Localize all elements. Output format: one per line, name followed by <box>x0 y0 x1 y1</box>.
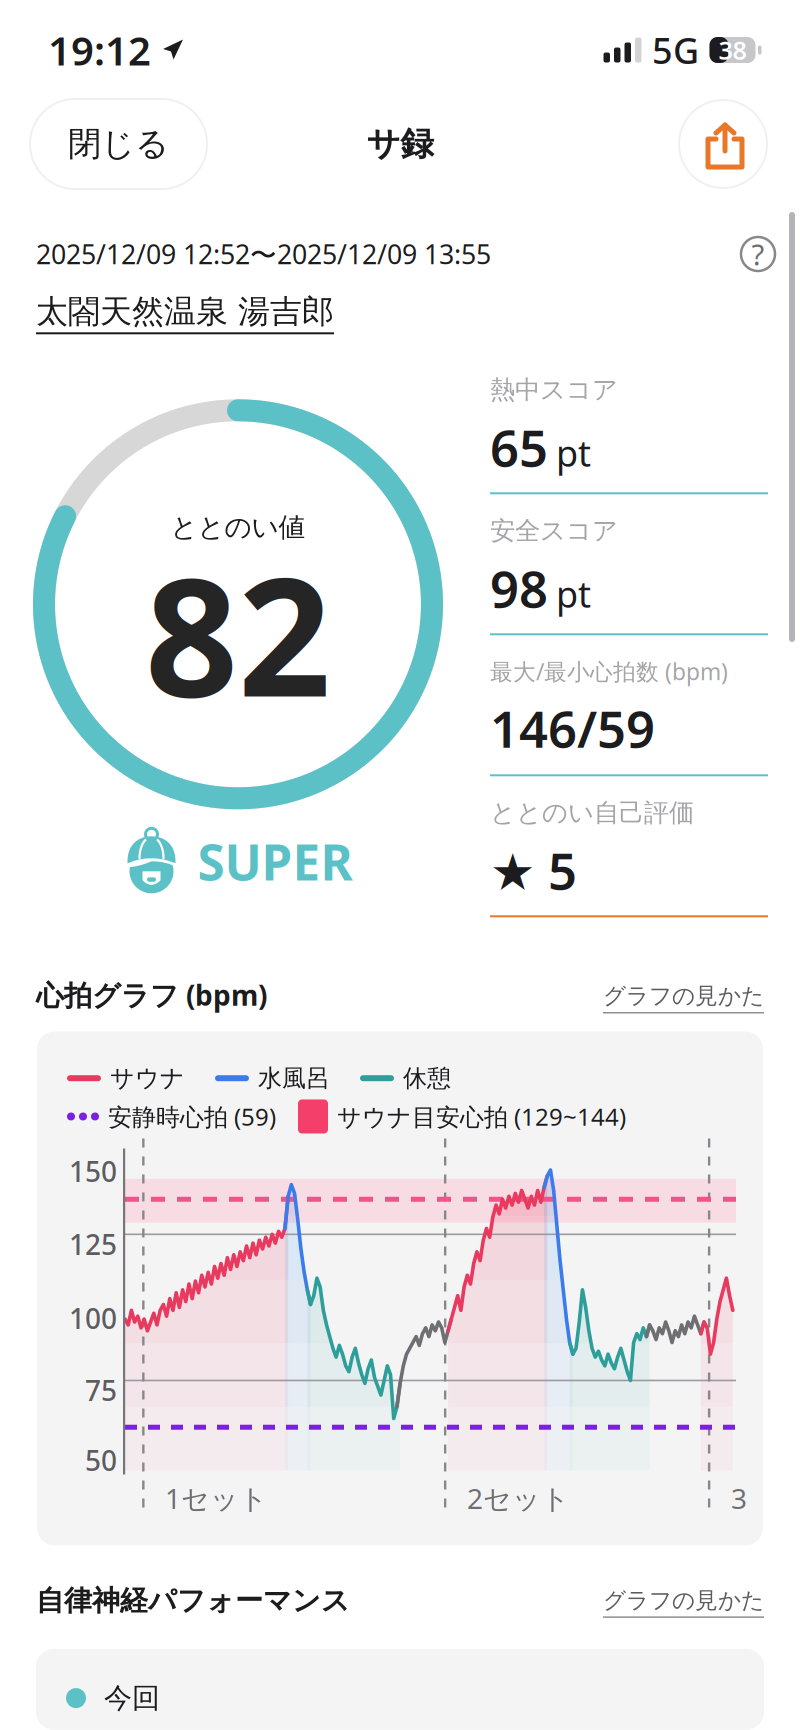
staticText: 2セット <box>467 1479 570 1517</box>
staticText: 150 <box>69 1152 117 1190</box>
button[interactable]: グラフの見かた <box>603 1586 764 1618</box>
staticText: 今回 <box>104 1681 160 1715</box>
staticText: 75 <box>85 1371 117 1409</box>
staticText: 2025/12/09 12:52〜2025/12/09 13:55 <box>36 236 491 272</box>
staticText: 50 <box>85 1441 117 1479</box>
staticText: ? <box>751 234 764 273</box>
staticText: 146/59 <box>490 694 655 762</box>
staticText: 65 <box>490 413 548 481</box>
button[interactable]: ヘルプ <box>734 230 782 278</box>
staticText: ととのい自己評価 <box>490 797 694 828</box>
button[interactable]: 太閤天然温泉 湯吉郎 <box>36 292 334 334</box>
staticText: 98 <box>490 554 548 622</box>
staticText: 休憩 <box>403 1063 451 1093</box>
staticText: グラフの見かた <box>603 982 764 1010</box>
staticText: 1セット <box>165 1479 268 1517</box>
staticText: 閉じる <box>68 123 169 164</box>
staticText: pt <box>556 429 591 477</box>
staticText: 熱中スコア <box>490 374 618 405</box>
staticText: 38 <box>718 33 746 67</box>
staticText: 125 <box>69 1225 117 1263</box>
staticText: サウナ <box>110 1063 185 1093</box>
staticText: 自律神経パフォーマンス <box>36 1583 350 1618</box>
staticText: サ録 <box>366 123 433 164</box>
staticText: サウナ目安心拍 (129~144) <box>337 1101 626 1132</box>
staticText: 最大/最小心拍数 (bpm) <box>490 656 728 686</box>
staticText: 心拍グラフ (bpm) <box>36 976 267 1013</box>
staticText: 5G <box>652 26 699 74</box>
staticText: ★ 5 <box>490 836 577 904</box>
staticText: SUPER <box>197 828 352 894</box>
staticText: 水風呂 <box>258 1063 330 1093</box>
staticText: 19:12 <box>48 23 151 76</box>
staticText: 太閤天然温泉 湯吉郎 <box>36 292 334 331</box>
button[interactable]: 共有 <box>679 100 767 188</box>
staticText: 安静時心拍 (59) <box>108 1101 276 1132</box>
staticText: 100 <box>69 1299 117 1337</box>
staticText: グラフの見かた <box>603 1586 764 1614</box>
button[interactable]: 閉じる <box>30 99 207 189</box>
staticText: pt <box>556 570 591 618</box>
staticText: 82 <box>145 525 331 741</box>
button[interactable]: グラフの見かた <box>603 982 764 1013</box>
staticText: 安全スコア <box>490 515 618 546</box>
staticText: 3 <box>731 1479 747 1517</box>
staticText: ととのい値 <box>170 511 305 544</box>
